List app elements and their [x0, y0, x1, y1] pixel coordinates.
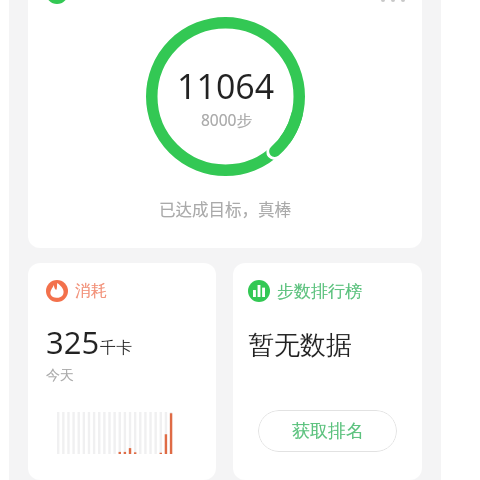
staticText: 8000步 [201, 109, 252, 130]
staticText: 消耗 [75, 281, 107, 301]
staticText: 11064 [177, 63, 275, 109]
button[interactable]: 消耗 [28, 263, 216, 480]
staticText: 已达成目标，真棒 [159, 197, 291, 221]
staticText: 暂无数据 [248, 329, 352, 362]
button[interactable]: Steps [46, 0, 68, 4]
staticText: 今天 [46, 367, 74, 385]
button[interactable]: 获取排名 [258, 410, 397, 452]
staticText: 步数排行榜 [277, 281, 362, 302]
staticText: 千卡 [100, 338, 132, 358]
staticText: 获取排名 [292, 420, 364, 443]
staticText: 325 [46, 321, 100, 363]
button[interactable]: 步数排行榜 [233, 263, 422, 480]
button[interactable]: More options [370, 0, 416, 11]
